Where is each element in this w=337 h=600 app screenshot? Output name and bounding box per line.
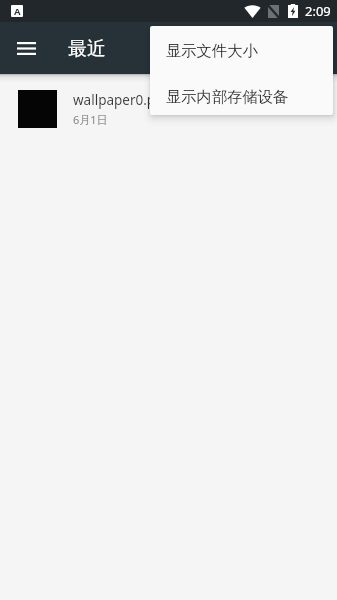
staticText: 显示文件大小 — [166, 41, 258, 60]
staticText: 最近 — [68, 37, 106, 61]
button[interactable]: Open navigation drawer — [0, 22, 52, 74]
button[interactable]: wallpaper0.png — [0, 74, 337, 144]
staticText: 6月1日 — [73, 112, 108, 127]
staticText: A — [14, 5, 21, 17]
button[interactable]: 显示内部存储设备 — [150, 74, 333, 115]
staticText: wallpaper0.png — [73, 91, 172, 109]
staticText: 显示内部存储设备 — [166, 87, 289, 106]
staticText: 2:09 — [305, 2, 331, 20]
button[interactable]: 显示文件大小 — [150, 28, 333, 72]
